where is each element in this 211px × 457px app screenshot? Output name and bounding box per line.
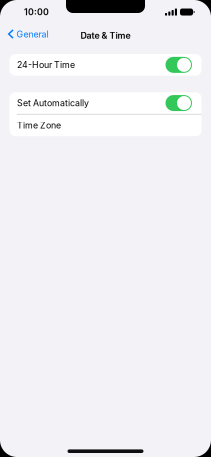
staticText: 10:00 — [24, 7, 49, 17]
staticText: Time Zone — [17, 120, 61, 131]
staticText: 24-Hour Time — [17, 59, 75, 70]
staticText: Date & Time — [80, 30, 130, 41]
staticText: Set Automatically — [17, 98, 89, 108]
button[interactable]: 24-Hour Time — [9, 54, 201, 76]
button[interactable]: General — [0, 22, 53, 46]
button[interactable]: Time Zone — [9, 114, 201, 136]
staticText: General — [16, 29, 48, 39]
button[interactable]: Set Automatically — [9, 92, 201, 114]
